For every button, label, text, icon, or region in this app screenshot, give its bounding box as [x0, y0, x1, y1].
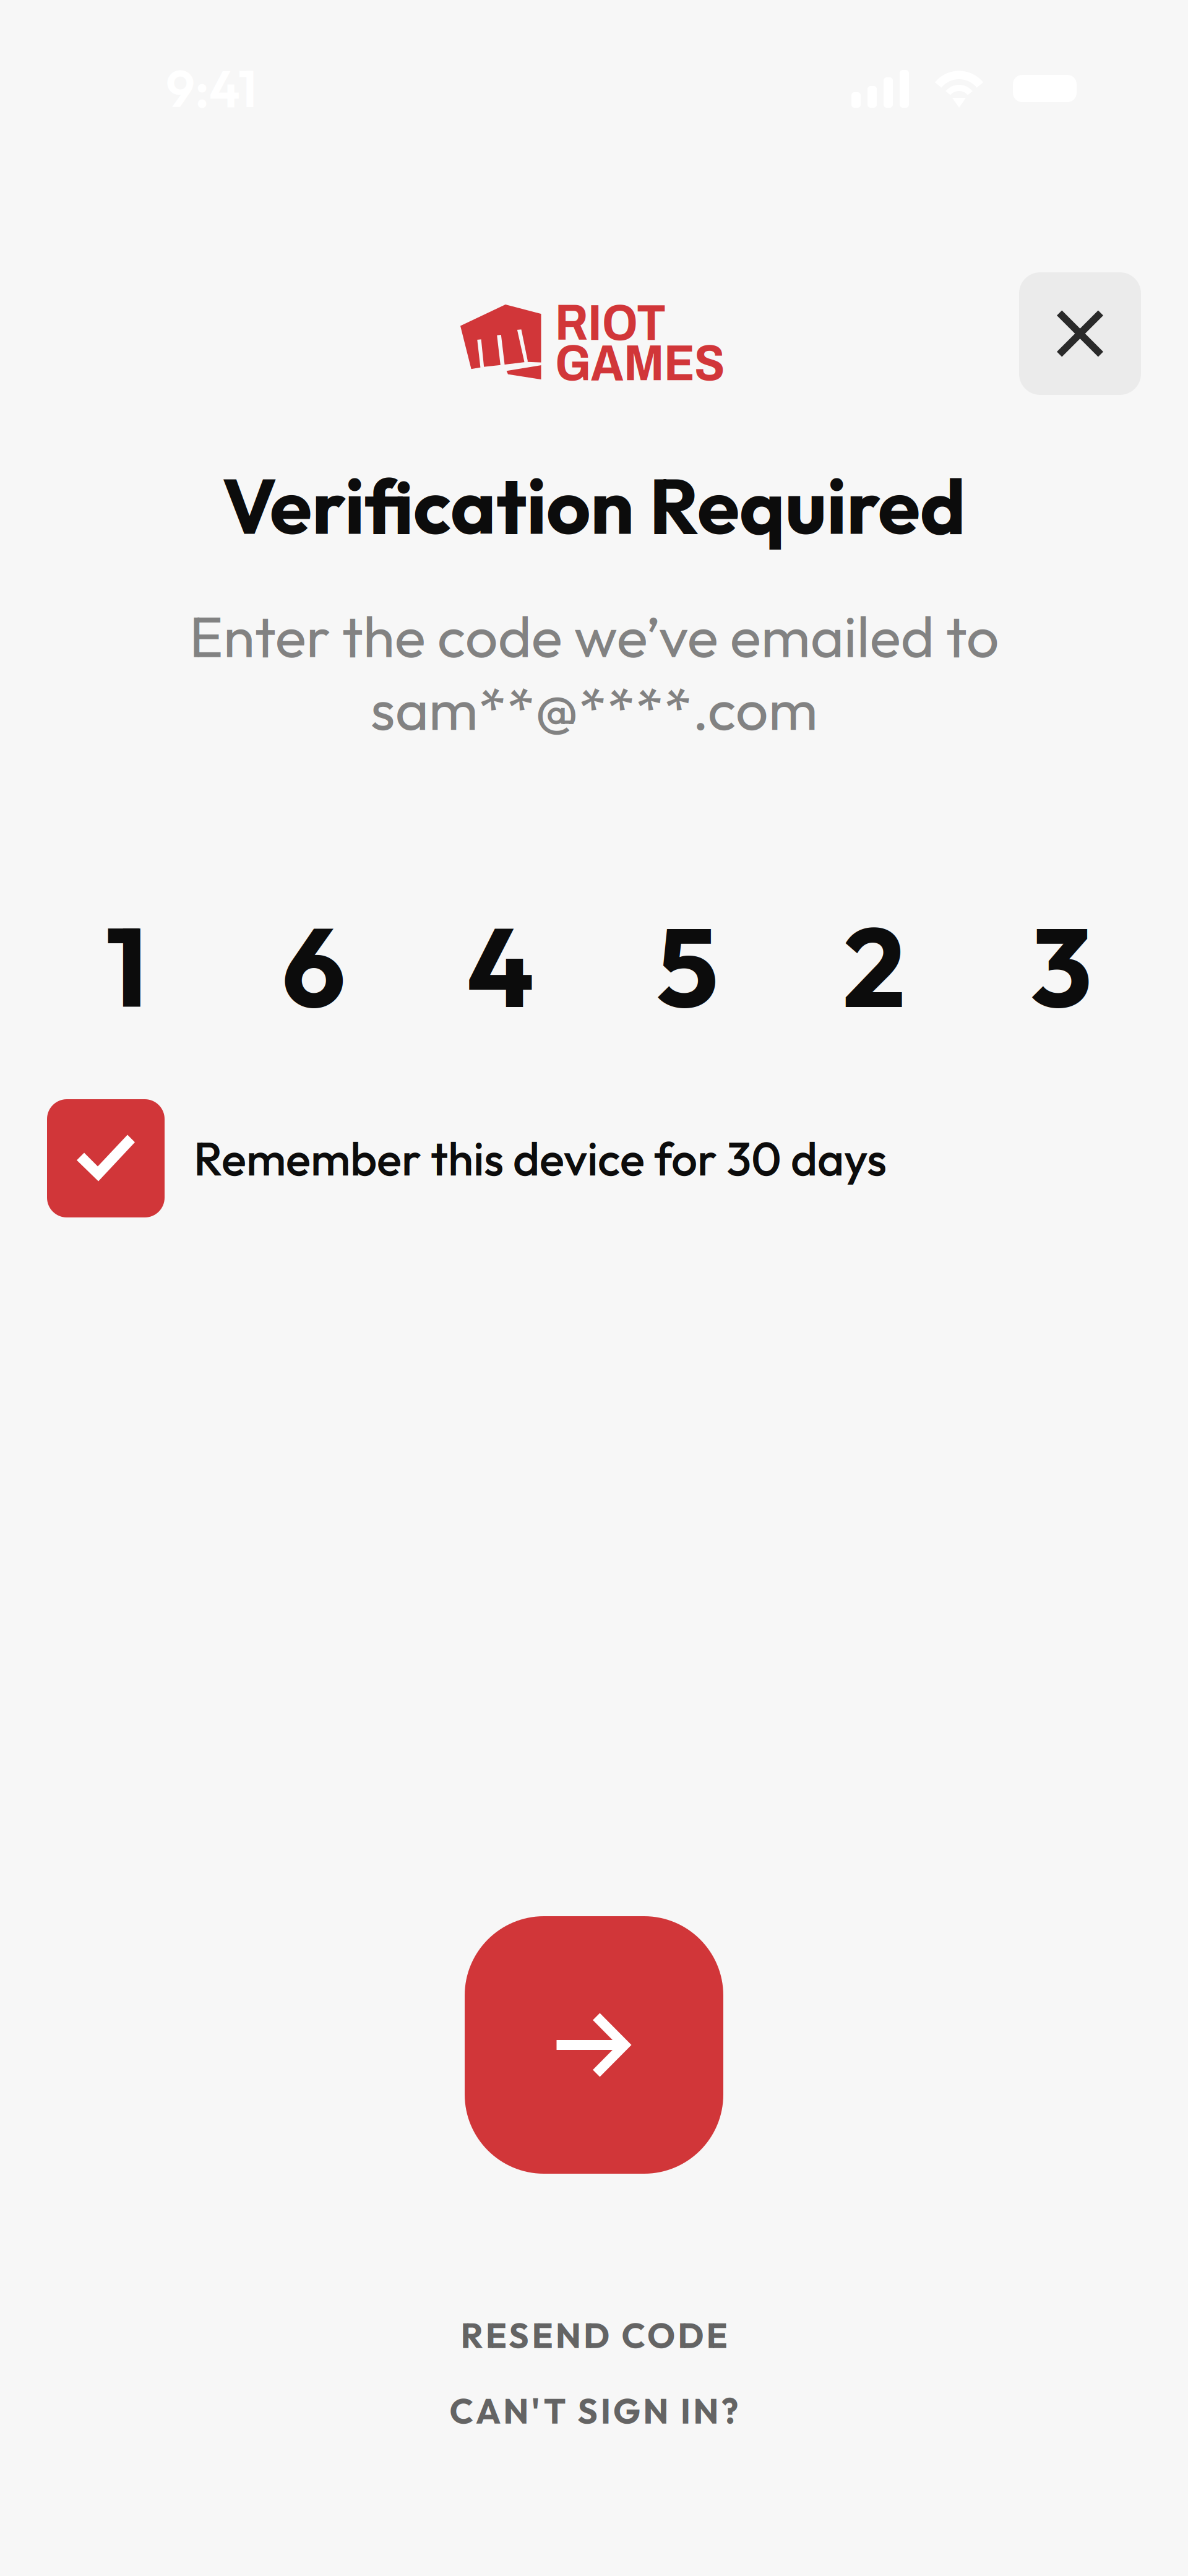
- staticText: RESEND CODE: [461, 2313, 727, 2357]
- staticText: 4: [467, 896, 534, 1036]
- button[interactable]: CAN'T SIGN IN?: [377, 2393, 811, 2428]
- staticText: Verification Required: [222, 457, 966, 554]
- staticText: 6: [282, 896, 345, 1036]
- button[interactable]: RESEND CODE: [377, 2318, 811, 2353]
- staticText: 5: [656, 896, 718, 1036]
- button[interactable]: Close: [1019, 272, 1141, 395]
- staticText: GAMES: [555, 336, 725, 391]
- staticText: CAN'T SIGN IN?: [450, 2389, 738, 2433]
- staticText: 2: [843, 896, 906, 1036]
- button[interactable]: Remember this device for 30 days: [47, 1099, 1141, 1217]
- staticText: Remember this device for 30 days: [194, 1129, 887, 1187]
- staticText: 1: [106, 896, 148, 1036]
- button[interactable]: Submit code: [465, 1916, 723, 2174]
- staticText: Enter the code we’ve emailed to sam**@**…: [189, 599, 999, 745]
- staticText: RIOT: [555, 296, 666, 351]
- staticText: 3: [1030, 896, 1092, 1036]
- staticText: 9:41: [166, 56, 257, 121]
